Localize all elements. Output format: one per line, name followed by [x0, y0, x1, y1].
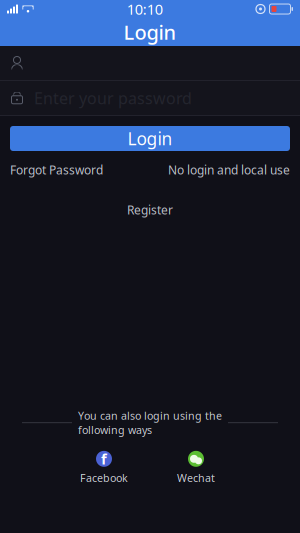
- staticText: Facebook: [80, 471, 128, 485]
- staticText: 10:10: [127, 0, 163, 19]
- button[interactable]: f: [72, 451, 136, 485]
- staticText: Forgot Password: [10, 162, 103, 178]
- button[interactable]: Register: [127, 198, 173, 222]
- staticText: Wechat: [177, 471, 215, 485]
- staticText: f: [101, 449, 107, 469]
- staticText: Register: [127, 202, 173, 218]
- button[interactable]: No login and local use: [168, 158, 290, 182]
- staticText: Login: [123, 19, 176, 45]
- staticText: No login and local use: [168, 162, 290, 178]
- button[interactable]: Login: [10, 126, 290, 151]
- staticText: Login: [127, 127, 172, 150]
- button[interactable]: Forgot Password: [10, 158, 103, 182]
- button[interactable]: [0, 46, 300, 80]
- button[interactable]: Enter your password: [0, 81, 300, 115]
- button[interactable]: Wechat: [164, 451, 228, 485]
- staticText: You can also login using the following w…: [78, 408, 222, 437]
- staticText: Enter your password: [34, 87, 192, 109]
